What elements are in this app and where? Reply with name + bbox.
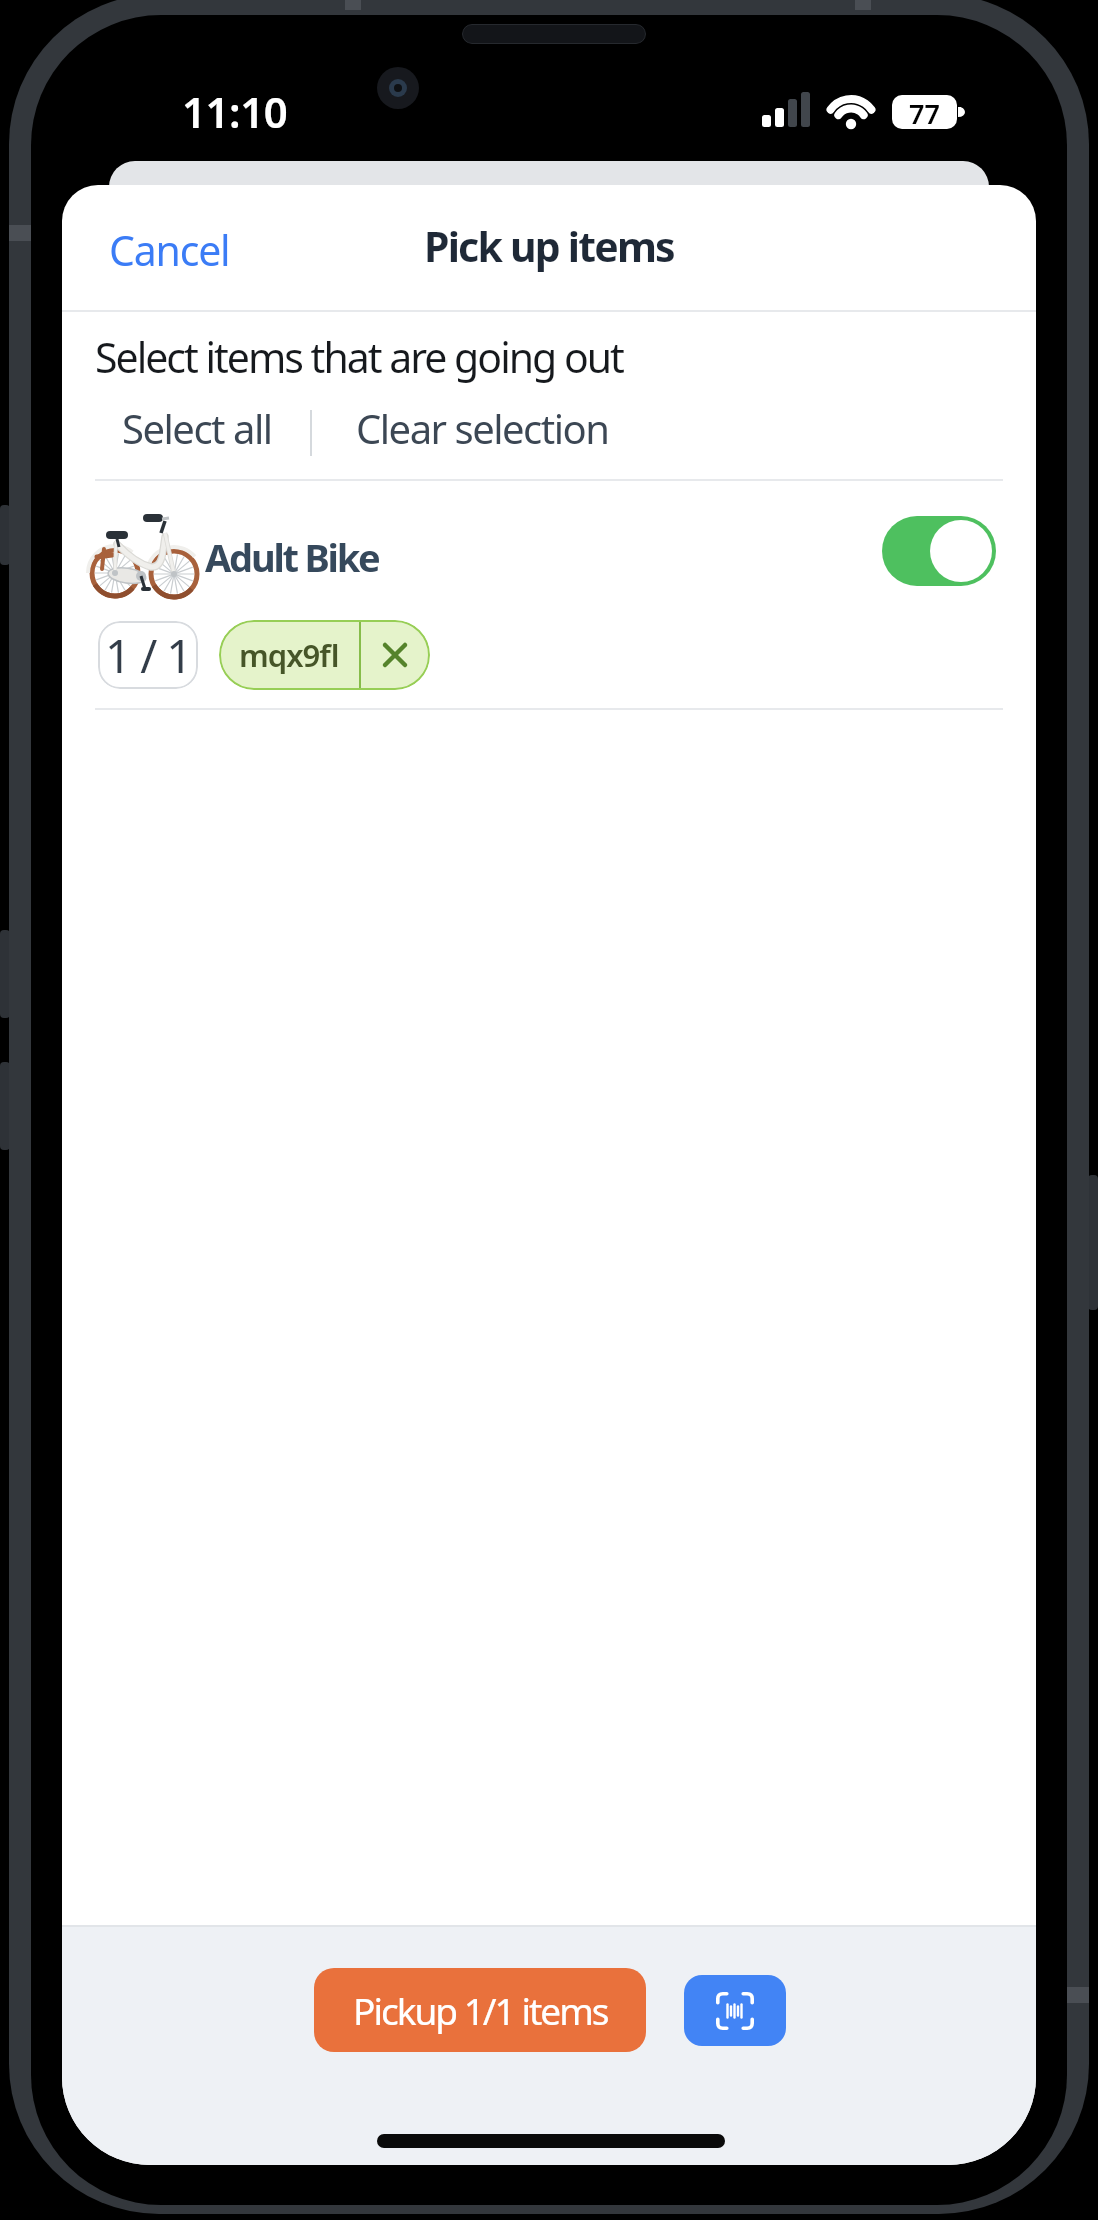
staticText: 11:10 bbox=[182, 83, 288, 140]
staticText: Clear selection bbox=[356, 401, 609, 455]
staticText: Pick up items bbox=[424, 218, 674, 274]
staticText: mqx9fl bbox=[239, 634, 339, 676]
button[interactable]: Cancel bbox=[92, 215, 262, 285]
button[interactable]: Pickup 1/1 items bbox=[314, 1968, 646, 2052]
staticText: Select all bbox=[122, 401, 272, 455]
button[interactable]: Clear selection bbox=[332, 385, 632, 470]
button[interactable]: Select all bbox=[102, 385, 292, 470]
staticText: Select items that are going out bbox=[95, 329, 623, 385]
button[interactable]: mqx9fl bbox=[219, 620, 430, 690]
staticText: Adult Bike bbox=[205, 531, 379, 583]
staticText: 1 / 1 bbox=[105, 624, 192, 687]
button[interactable] bbox=[882, 516, 996, 586]
staticText: 77 bbox=[909, 95, 940, 129]
staticText: Pickup 1/1 items bbox=[353, 1985, 608, 2035]
staticText: Cancel bbox=[109, 222, 230, 278]
button[interactable] bbox=[684, 1975, 786, 2046]
